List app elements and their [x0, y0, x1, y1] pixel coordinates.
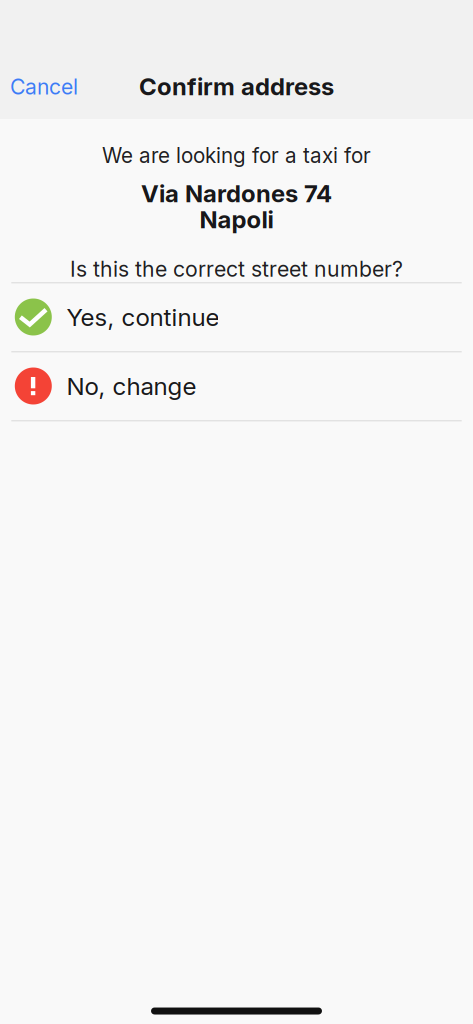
- staticText: Confirm address: [139, 72, 334, 101]
- staticText: Cancel: [10, 74, 78, 100]
- staticText: Via Nardones 74: [141, 179, 332, 208]
- staticText: Is this the correct street number?: [70, 256, 403, 282]
- staticText: No, change: [66, 371, 196, 401]
- button[interactable]: Cancel: [0, 63, 92, 111]
- staticText: We are looking for a taxi for: [102, 143, 371, 168]
- button[interactable]: No, change: [0, 352, 473, 420]
- staticText: Napoli: [199, 205, 273, 234]
- staticText: Yes, continue: [66, 302, 219, 332]
- button[interactable]: Yes, continue: [0, 283, 473, 351]
